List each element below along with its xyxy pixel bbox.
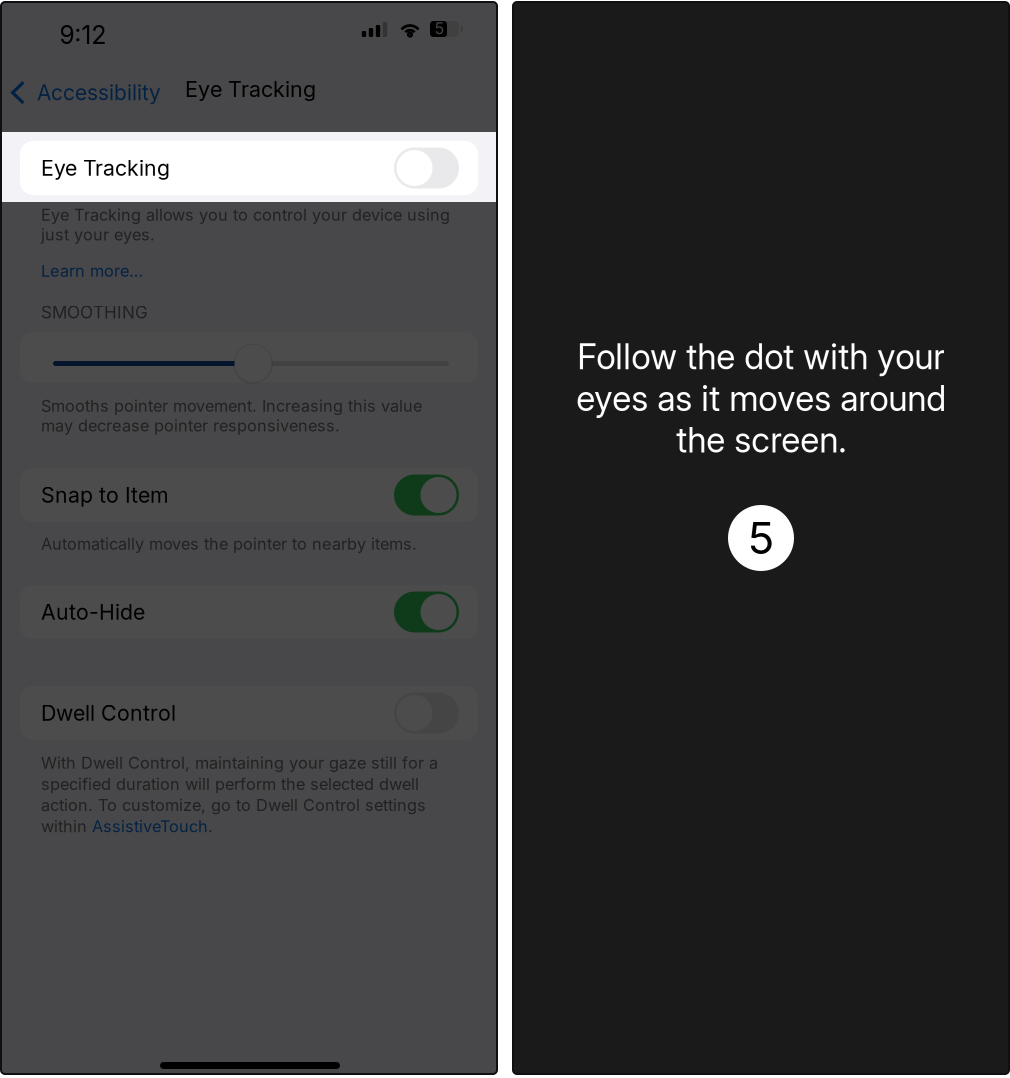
staticText: Dwell Control bbox=[41, 700, 176, 726]
staticText: Automatically moves the pointer to nearb… bbox=[41, 534, 417, 554]
staticText: Eye Tracking bbox=[185, 76, 316, 102]
staticText: AssistiveTouch bbox=[92, 816, 208, 836]
staticText: 5 bbox=[747, 511, 774, 565]
staticText: 9:12 bbox=[59, 20, 106, 50]
staticText: Eye Tracking bbox=[41, 155, 170, 181]
staticText: Eye Tracking allows you to control your … bbox=[41, 205, 450, 244]
staticText: within bbox=[41, 816, 92, 836]
staticText: With Dwell Control, maintaining your gaz… bbox=[41, 753, 438, 773]
button[interactable]: Dwell Control bbox=[20, 686, 478, 740]
button[interactable]: Learn more… bbox=[41, 261, 143, 281]
staticText: specified duration will perform the sele… bbox=[41, 774, 419, 794]
staticText: action. To customize, go to Dwell Contro… bbox=[41, 795, 426, 815]
staticText: Accessibility bbox=[37, 80, 161, 105]
staticText: . bbox=[208, 816, 213, 836]
button[interactable]: AssistiveTouch bbox=[92, 816, 208, 836]
staticText: Auto-Hide bbox=[41, 599, 145, 625]
button[interactable]: Snap to Item bbox=[20, 468, 478, 522]
staticText: Learn more… bbox=[41, 261, 143, 281]
staticText: Snap to Item bbox=[41, 482, 169, 508]
staticText: SMOOTHING bbox=[41, 302, 148, 323]
button[interactable]: Eye Tracking bbox=[20, 141, 478, 195]
staticText: Smooths pointer movement. Increasing thi… bbox=[41, 396, 422, 435]
button[interactable]: Auto-Hide bbox=[20, 585, 478, 639]
button[interactable]: Accessibility bbox=[11, 76, 161, 109]
staticText: Follow the dot with your eyes as it move… bbox=[576, 336, 946, 461]
staticText: 5 bbox=[434, 19, 444, 38]
